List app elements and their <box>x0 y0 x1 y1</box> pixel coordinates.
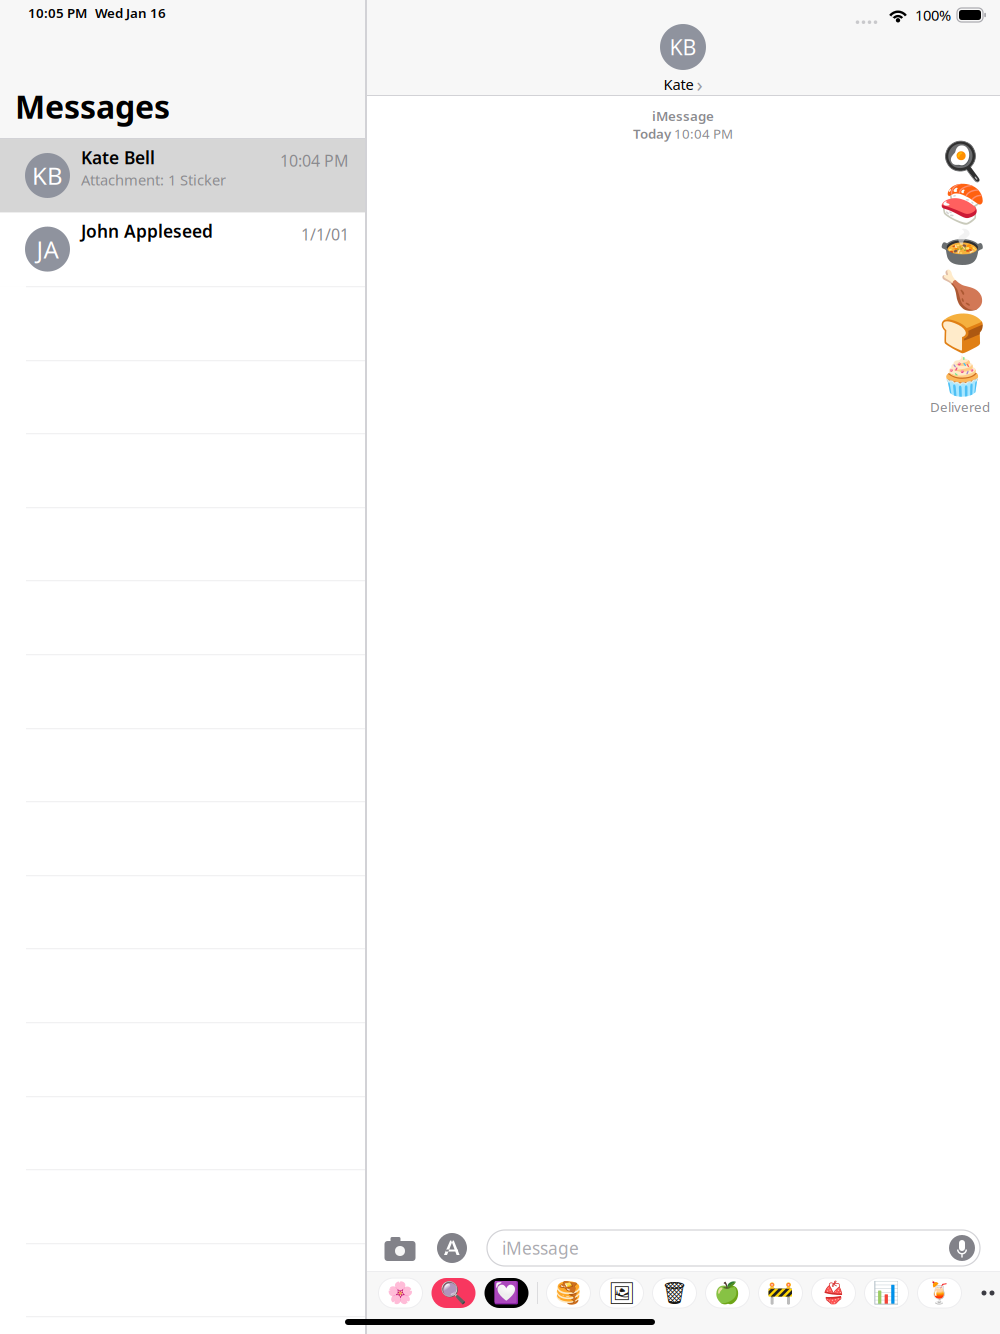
staticText: 🔍 <box>440 1281 467 1305</box>
staticText: Today <box>633 125 671 142</box>
staticText: › <box>696 71 702 98</box>
button[interactable]: Pancakes <box>542 1276 595 1310</box>
button[interactable]: Swimsuit <box>807 1276 860 1310</box>
staticText: JA <box>36 233 58 265</box>
button[interactable]: #images <box>427 1276 480 1310</box>
staticText: KB <box>32 160 63 191</box>
button[interactable]: Charts <box>860 1276 913 1310</box>
staticText: 🚧 <box>767 1281 794 1305</box>
staticText: 🍣 <box>939 183 985 226</box>
staticText: iMessage <box>652 107 714 125</box>
staticText: 🍹 <box>926 1281 953 1305</box>
button[interactable]: More apps <box>968 1276 1000 1310</box>
staticText: John Appleseed <box>81 220 213 243</box>
button[interactable]: Chalkboard <box>595 1276 648 1310</box>
staticText: Kate <box>663 74 693 94</box>
button[interactable]: JA <box>0 213 366 286</box>
staticText: 🍗 <box>939 269 985 312</box>
staticText: 🍳 <box>939 140 985 183</box>
staticText: 🍲 <box>939 226 985 269</box>
staticText: 100% <box>915 5 951 25</box>
staticText: 🧁 <box>939 355 985 398</box>
staticText: 🍏 <box>714 1281 741 1305</box>
staticText: 💟 <box>493 1281 520 1305</box>
button[interactable]: App Store <box>435 1225 469 1271</box>
staticText: 🖼 <box>608 1281 635 1305</box>
button[interactable]: Drinks <box>913 1276 966 1310</box>
staticText: 🥞 <box>555 1281 582 1305</box>
button[interactable]: Digital Touch <box>480 1276 533 1310</box>
staticText: 🌸 <box>387 1281 414 1305</box>
staticText: Messages <box>15 85 170 127</box>
staticText: iMessage <box>502 1236 579 1259</box>
staticText: 10:05 PM <box>28 4 87 22</box>
staticText: 👙 <box>820 1281 847 1305</box>
staticText: 🍞 <box>939 312 985 355</box>
button[interactable]: iMessage <box>487 1230 980 1266</box>
staticText: Delivered <box>930 398 990 416</box>
staticText: 10:04 PM <box>674 125 733 142</box>
button[interactable]: Camera <box>383 1225 417 1271</box>
button[interactable]: KB <box>660 24 706 98</box>
staticText: 10:04 PM <box>280 150 349 171</box>
staticText: 1/1/01 <box>301 224 349 245</box>
button[interactable]: Apple <box>701 1276 754 1310</box>
button[interactable]: KB <box>0 139 366 213</box>
staticText: 🗑 <box>661 1281 688 1305</box>
staticText: 📊 <box>873 1281 900 1305</box>
staticText: Wed Jan 16 <box>95 4 166 22</box>
button[interactable]: Photos <box>374 1276 427 1310</box>
staticText: KB <box>669 33 696 61</box>
button[interactable]: Recycle <box>648 1276 701 1310</box>
staticText: Attachment: 1 Sticker <box>81 170 226 189</box>
staticText: Kate Bell <box>81 146 155 169</box>
button[interactable]: Cone <box>754 1276 807 1310</box>
